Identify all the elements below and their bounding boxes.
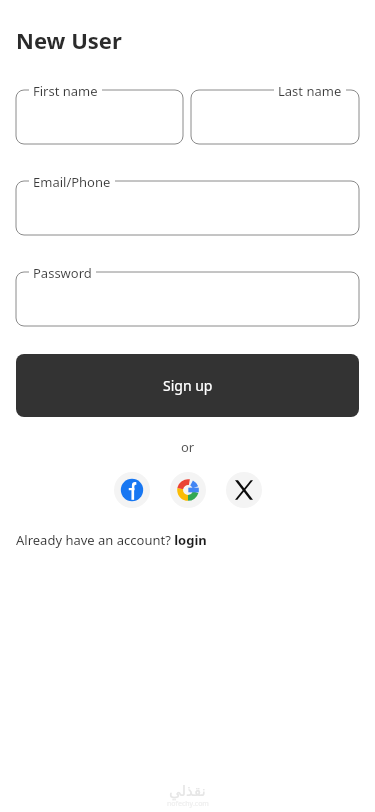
staticText: Email/Phone [33,173,111,191]
staticText: Sign up [163,376,213,395]
button[interactable] [191,90,359,144]
staticText: nofechy.com [167,799,209,809]
button[interactable]: Sign up [16,354,359,417]
button[interactable] [16,181,359,235]
staticText: نقذلي [169,782,206,799]
staticText: or [0,438,375,456]
staticText: Already have an account? login [16,531,207,549]
staticText: Password [33,264,92,282]
button[interactable] [16,90,183,144]
button[interactable]: Sign up with Google [170,472,206,508]
button[interactable]: Already have an account? login [16,531,207,549]
button[interactable]: Sign up with Facebook [114,472,150,508]
button[interactable] [16,272,359,326]
staticText: Last name [278,82,342,100]
staticText: New User [16,25,122,55]
button[interactable]: Sign up with X [226,472,262,508]
staticText: First name [33,82,98,100]
